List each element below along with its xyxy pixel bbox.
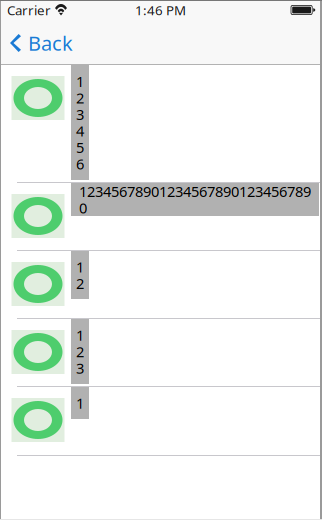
button[interactable]: 1 2 3 4 5 6 — [1, 65, 320, 182]
staticText: 1 2 — [76, 257, 84, 293]
button[interactable]: 1 — [1, 387, 320, 455]
staticText: 1 2 3 — [76, 325, 84, 378]
button[interactable]: 12345678901234567890123456789 0 — [1, 183, 320, 250]
staticText: 1 2 3 4 5 6 — [76, 72, 84, 173]
button[interactable]: 1 2 — [1, 251, 320, 318]
staticText: Back — [28, 30, 73, 56]
staticText: 1:46 PM — [135, 1, 186, 19]
staticText: Carrier — [7, 1, 51, 19]
button[interactable]: 1 2 3 — [1, 319, 320, 386]
button[interactable]: Back — [1, 21, 73, 63]
staticText: 1 — [76, 393, 84, 413]
staticText: 12345678901234567890123456789 0 — [79, 181, 311, 217]
